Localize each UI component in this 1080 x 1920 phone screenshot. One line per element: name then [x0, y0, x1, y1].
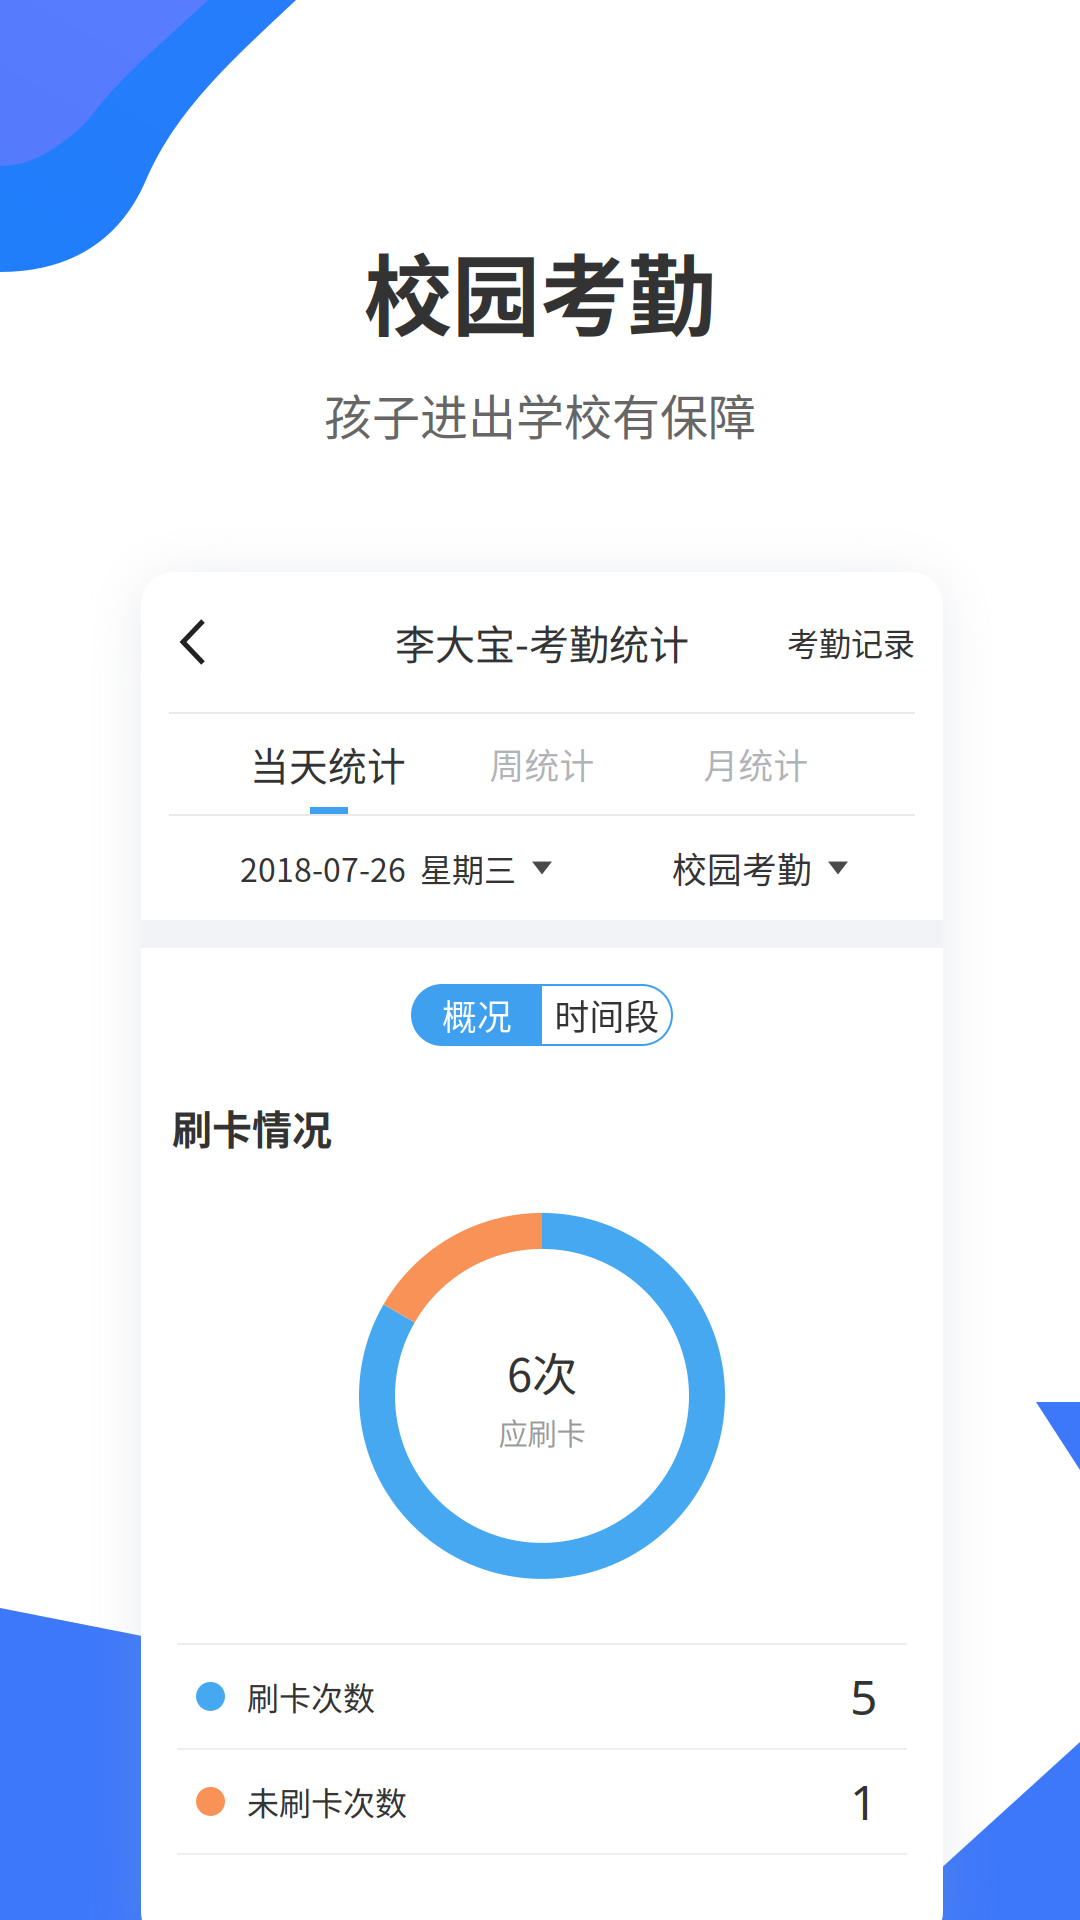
button[interactable]: 未刷卡次数 [141, 1750, 943, 1853]
staticText: 月统计 [703, 739, 808, 789]
button[interactable]: 月统计 [649, 714, 863, 814]
staticText: 校园考勤 [364, 226, 716, 354]
button[interactable]: 时间段 [542, 985, 672, 1045]
staticText: 应刷卡 [498, 1410, 585, 1453]
button[interactable]: 考勤记录 [771, 572, 931, 712]
button[interactable]: 2018-07-26 星期三 [240, 816, 552, 920]
staticText: 5 [850, 1664, 877, 1728]
button[interactable]: Back [153, 572, 235, 712]
button[interactable]: 当天统计 [221, 714, 435, 814]
staticText: 6次 [507, 1339, 577, 1404]
button[interactable]: 校园考勤 [672, 816, 848, 920]
button[interactable]: 周统计 [435, 714, 649, 814]
button[interactable]: 概况 [412, 985, 542, 1045]
staticText: 时间段 [554, 990, 659, 1040]
staticText: 当天统计 [250, 736, 406, 792]
staticText: 李大宝-考勤统计 [395, 613, 689, 671]
staticText: 1 [850, 1769, 877, 1833]
staticText: 2018-07-26 星期三 [240, 845, 516, 891]
staticText: 考勤记录 [787, 619, 915, 665]
staticText: 校园考勤 [672, 843, 812, 893]
staticText: 刷卡情况 [172, 1098, 332, 1156]
button[interactable]: 刷卡次数 [141, 1645, 943, 1748]
staticText: 概况 [442, 990, 512, 1040]
staticText: 刷卡次数 [247, 1673, 375, 1720]
staticText: 未刷卡次数 [247, 1778, 407, 1825]
staticText: 孩子进出学校有保障 [324, 379, 756, 449]
staticText: 周统计 [489, 739, 594, 789]
